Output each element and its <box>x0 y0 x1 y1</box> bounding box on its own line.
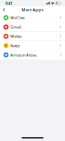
button[interactable]: Gmail <box>0 22 65 31</box>
staticText: WeChat <box>10 15 24 20</box>
staticText: Weibo <box>10 34 21 39</box>
staticText: Gmail <box>10 24 21 30</box>
button[interactable]: Back <box>2 6 6 13</box>
staticText: Notes <box>10 43 20 48</box>
button[interactable]: WeChat <box>0 13 65 22</box>
button[interactable]: Notes <box>0 41 65 50</box>
staticText: More Apps <box>21 7 43 12</box>
staticText: Amazon Alexa <box>10 52 36 57</box>
button[interactable]: Weibo <box>0 32 65 41</box>
staticText: 9:41 <box>5 0 12 6</box>
button[interactable]: Amazon Alexa <box>0 50 65 59</box>
